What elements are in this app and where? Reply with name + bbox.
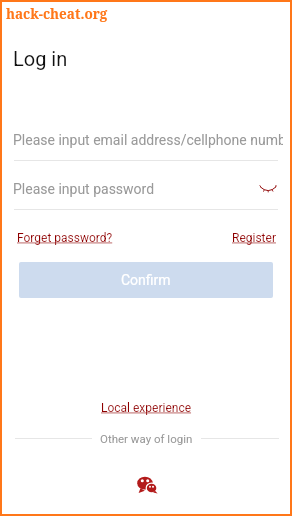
staticText: Register — [232, 231, 276, 245]
staticText: Log in — [13, 47, 68, 70]
staticText: hack-cheat.org — [6, 5, 108, 23]
button[interactable]: Forget password? — [17, 231, 113, 245]
button[interactable]: Sign in with WeChat — [135, 474, 158, 493]
staticText: Please input password — [13, 181, 155, 197]
staticText: Other way of login — [100, 432, 193, 445]
button[interactable]: Register — [213, 231, 276, 245]
staticText: Please input email address/cellphone num… — [13, 132, 283, 148]
button[interactable]: Show password — [252, 176, 282, 198]
button[interactable]: Confirm — [19, 262, 273, 298]
staticText: Confirm — [121, 272, 171, 288]
button[interactable]: Local experience — [101, 401, 192, 415]
